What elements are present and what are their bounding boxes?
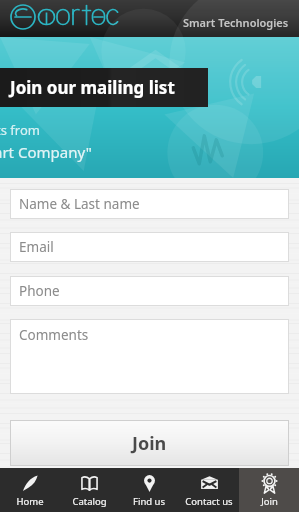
staticText: Home — [16, 495, 44, 508]
button[interactable]: Home — [0, 468, 59, 512]
staticText: ts from — [0, 121, 40, 139]
button[interactable]: Name & Last name — [10, 189, 289, 219]
staticText: Comments — [19, 326, 89, 344]
staticText: Catalog — [72, 495, 107, 508]
staticText: Phone — [19, 282, 60, 300]
button[interactable]: Join our mailing list — [0, 68, 208, 107]
button[interactable]: Email — [10, 232, 289, 262]
staticText: Find us — [133, 495, 165, 508]
staticText: Join — [132, 431, 167, 456]
button[interactable]: Find us — [119, 468, 179, 512]
button[interactable]: Join — [239, 468, 299, 512]
button[interactable]: Contact us — [179, 468, 239, 512]
staticText: Name & Last name — [19, 195, 140, 213]
button[interactable]: Join — [10, 420, 289, 466]
staticText: Email — [19, 238, 54, 256]
staticText: Smart Technologies — [183, 15, 289, 30]
button[interactable]: Phone — [10, 276, 289, 306]
staticText: art Company" — [0, 142, 92, 162]
staticText: Join our mailing list — [10, 76, 175, 99]
staticText: Join — [261, 495, 278, 508]
button[interactable]: Comments — [10, 319, 289, 394]
button[interactable]: Catalog — [59, 468, 119, 512]
staticText: Contact us — [185, 495, 233, 508]
